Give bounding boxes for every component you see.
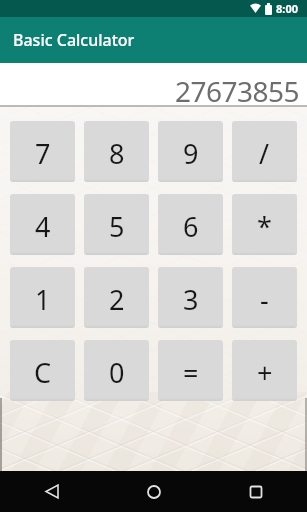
button[interactable]: = xyxy=(158,340,223,401)
staticText: + xyxy=(257,354,273,391)
button[interactable]: 1 xyxy=(10,267,75,328)
staticText: 5 xyxy=(109,208,125,245)
staticText: 1 xyxy=(35,281,51,318)
staticText: = xyxy=(183,354,199,391)
staticText: 0 xyxy=(109,354,125,391)
staticText: 2 xyxy=(109,281,125,318)
button[interactable]: 3 xyxy=(158,267,223,328)
staticText: 9 xyxy=(183,135,199,172)
button[interactable] xyxy=(0,471,103,512)
staticText: 8:00 xyxy=(276,1,298,16)
button[interactable]: - xyxy=(232,267,297,328)
button[interactable]: 7 xyxy=(10,121,75,182)
button[interactable]: 8 xyxy=(84,121,149,182)
button[interactable]: C xyxy=(10,340,75,401)
button[interactable]: * xyxy=(232,194,297,255)
button[interactable]: + xyxy=(232,340,297,401)
button[interactable]: 4 xyxy=(10,194,75,255)
staticText: * xyxy=(257,208,272,245)
button[interactable]: 5 xyxy=(84,194,149,255)
button[interactable]: 0 xyxy=(84,340,149,401)
staticText: C xyxy=(34,354,52,391)
button[interactable]: 27673855 xyxy=(0,63,307,107)
staticText: 6 xyxy=(183,208,199,245)
button[interactable] xyxy=(205,471,307,512)
button[interactable]: 9 xyxy=(158,121,223,182)
staticText: Basic Calculator xyxy=(13,29,135,51)
staticText: / xyxy=(259,135,270,172)
button[interactable]: 6 xyxy=(158,194,223,255)
staticText: - xyxy=(260,281,269,318)
button[interactable]: / xyxy=(232,121,297,182)
staticText: 3 xyxy=(183,281,199,318)
staticText: 4 xyxy=(35,208,51,245)
button[interactable]: 2 xyxy=(84,267,149,328)
staticText: 8 xyxy=(109,135,125,172)
staticText: 27673855 xyxy=(175,72,300,110)
button[interactable] xyxy=(103,471,205,512)
staticText: 7 xyxy=(35,135,51,172)
